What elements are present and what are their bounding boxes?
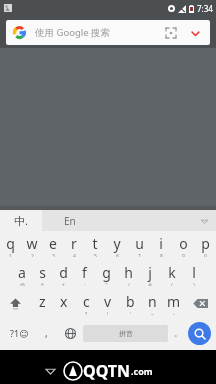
button[interactable]: h xyxy=(117,263,139,286)
button[interactable]: , xyxy=(35,320,57,346)
staticText: g xyxy=(102,263,111,282)
staticText: 7 xyxy=(138,253,141,257)
staticText: / xyxy=(128,282,130,286)
staticText: ? xyxy=(85,311,88,315)
button[interactable]: 中. xyxy=(0,210,42,231)
staticText: e xyxy=(49,234,57,253)
staticText: 3 xyxy=(52,253,55,257)
button[interactable]: y xyxy=(106,234,128,257)
button[interactable]: k xyxy=(161,263,183,286)
staticText: 8 xyxy=(160,253,163,257)
staticText: y xyxy=(113,234,121,253)
button[interactable]: i xyxy=(150,234,172,257)
staticText: * xyxy=(41,282,44,286)
button[interactable]: r xyxy=(63,234,84,257)
staticText: , xyxy=(45,326,48,340)
button[interactable]: s xyxy=(32,263,53,286)
staticText: 0 xyxy=(204,253,207,257)
staticText: z xyxy=(39,292,46,311)
button[interactable]: c xyxy=(75,292,97,315)
button[interactable]: 。 xyxy=(168,320,188,346)
staticText: 2 xyxy=(31,253,34,257)
staticText: f xyxy=(82,263,87,282)
staticText: ' xyxy=(130,311,132,315)
button[interactable]: More options xyxy=(198,215,210,227)
staticText: 7:34 xyxy=(197,3,213,14)
button[interactable]: Shift xyxy=(0,292,31,315)
staticText: 。 xyxy=(174,328,182,338)
staticText: 1 xyxy=(9,253,12,257)
staticText: j xyxy=(148,263,152,282)
button[interactable]: Expand xyxy=(187,25,203,41)
staticText: ~ xyxy=(151,311,154,315)
button[interactable]: m xyxy=(163,292,185,315)
staticText: t xyxy=(92,234,98,253)
staticText: b xyxy=(126,292,135,311)
staticText: v xyxy=(104,292,112,311)
staticText: h xyxy=(124,263,133,282)
button[interactable]: b xyxy=(119,292,141,315)
staticText: a xyxy=(18,263,26,282)
button[interactable]: 拼音 xyxy=(83,325,168,342)
button[interactable]: Google Lens xyxy=(163,25,179,41)
staticText: ?1☺ xyxy=(10,327,29,339)
button[interactable]: Change language xyxy=(57,320,83,346)
button[interactable]: En xyxy=(42,210,216,231)
button[interactable]: x xyxy=(53,292,75,315)
staticText: k xyxy=(168,263,176,282)
staticText: s xyxy=(39,263,46,282)
button[interactable]: Backspace xyxy=(185,292,216,315)
staticText: + xyxy=(62,282,65,286)
staticText: x xyxy=(60,292,68,311)
button[interactable]: a xyxy=(11,263,32,286)
staticText: En xyxy=(64,214,76,228)
button[interactable]: j xyxy=(139,263,161,286)
staticText: ! xyxy=(107,311,109,315)
staticText: ( xyxy=(171,282,173,286)
staticText: 拼音 xyxy=(119,329,133,338)
staticText: o xyxy=(179,234,188,253)
button[interactable]: q xyxy=(0,234,21,257)
staticText: # xyxy=(148,282,152,286)
button[interactable]: w xyxy=(21,234,42,257)
staticText: 4 xyxy=(73,253,76,257)
staticText: 9 xyxy=(182,253,185,257)
staticText: 5 xyxy=(94,253,97,257)
button[interactable]: g xyxy=(95,263,117,286)
staticText: 中. xyxy=(14,213,28,228)
button[interactable]: v xyxy=(97,292,119,315)
staticText: l xyxy=(192,263,196,282)
button[interactable]: n xyxy=(141,292,163,315)
staticText: n xyxy=(148,292,157,311)
button[interactable]: l xyxy=(183,263,205,286)
button[interactable]: u xyxy=(128,234,150,257)
staticText: 6 xyxy=(116,253,119,257)
staticText: r xyxy=(71,234,77,253)
button[interactable]: t xyxy=(84,234,106,257)
staticText: .com xyxy=(131,365,153,377)
staticText: i xyxy=(159,234,163,253)
staticText: - xyxy=(173,311,175,315)
staticText: QQTN xyxy=(83,360,131,382)
button[interactable]: d xyxy=(53,263,74,286)
button[interactable]: Back xyxy=(40,361,60,381)
staticText: " xyxy=(105,282,108,286)
button[interactable]: ?1☺ xyxy=(3,320,35,346)
button[interactable]: Search xyxy=(188,322,211,345)
button[interactable]: z xyxy=(31,292,53,315)
button[interactable]: f xyxy=(74,263,95,286)
staticText: @ xyxy=(20,282,25,286)
staticText: d xyxy=(59,263,68,282)
button[interactable]: 使用 Google 搜索 xyxy=(6,20,210,45)
button[interactable]: p xyxy=(194,234,216,257)
staticText: c xyxy=(83,292,90,311)
staticText: 使用 Google 搜索 xyxy=(35,26,111,39)
staticText: : xyxy=(84,282,86,286)
button[interactable]: o xyxy=(172,234,194,257)
staticText: w xyxy=(26,234,38,253)
staticText: ) xyxy=(193,282,195,286)
button[interactable]: e xyxy=(42,234,63,257)
staticText: q xyxy=(6,234,15,253)
